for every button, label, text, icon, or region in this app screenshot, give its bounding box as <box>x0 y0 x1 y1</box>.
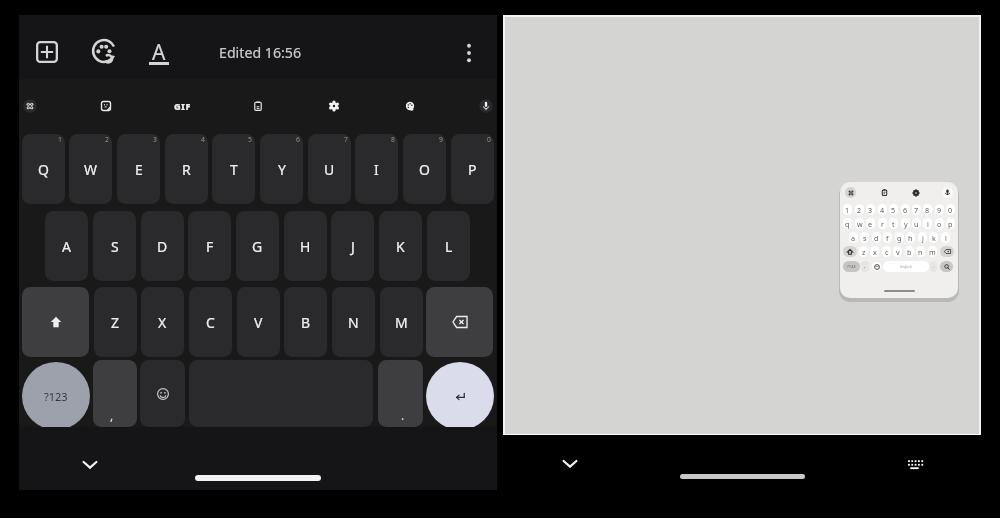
button[interactable]: D <box>141 211 184 281</box>
button[interactable]: Settings <box>319 91 349 121</box>
button[interactable]: Formatting <box>143 36 175 68</box>
staticText: , <box>864 263 866 270</box>
button[interactable]: Period <box>378 360 423 427</box>
button[interactable]: N <box>332 287 375 357</box>
button[interactable]: S <box>93 211 136 281</box>
button[interactable]: F <box>188 211 231 281</box>
button[interactable]: v <box>893 246 902 257</box>
button[interactable]: Hide keyboard <box>75 449 105 479</box>
button[interactable]: n <box>916 246 925 257</box>
button[interactable]: Shift <box>843 246 857 257</box>
button[interactable]: h <box>906 232 915 243</box>
button[interactable]: c <box>882 246 891 257</box>
button[interactable]: X <box>141 287 184 357</box>
button[interactable]: Switch keyboard <box>899 448 929 478</box>
button[interactable]: p <box>946 218 955 229</box>
button[interactable]: Clipboard <box>243 91 273 121</box>
button[interactable]: w <box>855 218 864 229</box>
button[interactable]: Comma <box>93 360 137 427</box>
button[interactable]: a <box>849 232 858 243</box>
button[interactable]: g <box>895 232 904 243</box>
button[interactable]: m <box>928 246 937 257</box>
button[interactable]: W <box>69 134 112 204</box>
button[interactable]: Clipboard <box>879 187 890 198</box>
button[interactable]: A <box>45 211 88 281</box>
button[interactable]: P <box>451 134 494 204</box>
button[interactable]: i <box>923 218 932 229</box>
button[interactable]: 1 <box>843 204 852 215</box>
button[interactable]: Symbols <box>22 362 90 430</box>
button[interactable]: Settings <box>910 187 921 198</box>
button[interactable]: r <box>878 218 887 229</box>
button[interactable]: U <box>308 134 351 204</box>
button[interactable]: Enter <box>426 362 494 430</box>
button[interactable]: 3 <box>866 204 875 215</box>
button[interactable]: 4 <box>878 204 887 215</box>
button[interactable]: e <box>866 218 875 229</box>
button[interactable]: Change colour <box>84 32 124 72</box>
button[interactable]: Search <box>940 261 953 272</box>
button[interactable]: t <box>889 218 898 229</box>
button[interactable]: Apps <box>15 91 45 121</box>
button[interactable]: Voice input <box>471 91 501 121</box>
button[interactable]: O <box>403 134 446 204</box>
button[interactable]: o <box>935 218 944 229</box>
button[interactable]: Apps <box>845 187 856 198</box>
button[interactable]: R <box>165 134 208 204</box>
button[interactable]: B <box>284 287 327 357</box>
button[interactable]: Space <box>883 261 929 272</box>
button[interactable]: Stickers <box>91 91 121 121</box>
button[interactable]: j <box>918 232 927 243</box>
button[interactable]: 7 <box>912 204 921 215</box>
button[interactable]: Comma <box>861 261 869 272</box>
button[interactable]: 0 <box>946 204 955 215</box>
button[interactable]: Y <box>260 134 303 204</box>
button[interactable]: L <box>427 211 470 281</box>
button[interactable]: More options <box>449 33 489 73</box>
button[interactable]: x <box>870 246 879 257</box>
button[interactable]: GIF <box>167 91 197 121</box>
button[interactable]: Backspace <box>940 246 954 257</box>
button[interactable]: 5 <box>889 204 898 215</box>
staticText: , <box>110 407 114 423</box>
button[interactable]: Symbols <box>843 261 860 272</box>
button[interactable]: Shift <box>22 287 89 357</box>
button[interactable]: Q <box>22 134 65 204</box>
button[interactable]: Add <box>29 34 65 70</box>
button[interactable]: J <box>331 211 374 281</box>
button[interactable]: u <box>912 218 921 229</box>
button[interactable]: Backspace <box>426 287 493 357</box>
button[interactable]: H <box>284 211 327 281</box>
button[interactable]: s <box>860 232 869 243</box>
button[interactable]: f <box>883 232 892 243</box>
button[interactable]: y <box>901 218 910 229</box>
button[interactable]: Emoji <box>140 360 185 427</box>
button[interactable]: G <box>236 211 279 281</box>
button[interactable]: k <box>929 232 938 243</box>
button[interactable]: Z <box>94 287 137 357</box>
button[interactable]: Voice input <box>942 187 953 198</box>
button[interactable]: l <box>941 232 950 243</box>
button[interactable]: 2 <box>855 204 864 215</box>
button[interactable]: b <box>905 246 914 257</box>
button[interactable]: 6 <box>901 204 910 215</box>
button[interactable]: V <box>237 287 280 357</box>
button[interactable]: Theme <box>395 91 425 121</box>
button[interactable]: T <box>212 134 255 204</box>
button[interactable]: E <box>117 134 160 204</box>
button[interactable]: M <box>380 287 423 357</box>
button[interactable]: q <box>843 218 852 229</box>
button[interactable]: 9 <box>935 204 944 215</box>
staticText: R <box>182 160 191 179</box>
button[interactable]: K <box>379 211 422 281</box>
button[interactable]: I <box>355 134 398 204</box>
button[interactable]: z <box>859 246 868 257</box>
button[interactable]: C <box>189 287 232 357</box>
button[interactable]: Emoji <box>872 261 881 272</box>
button[interactable]: 8 <box>923 204 932 215</box>
button[interactable]: Hide keyboard <box>555 448 585 478</box>
staticText: L <box>445 237 453 256</box>
button[interactable]: Period <box>930 261 937 272</box>
button[interactable]: d <box>872 232 881 243</box>
